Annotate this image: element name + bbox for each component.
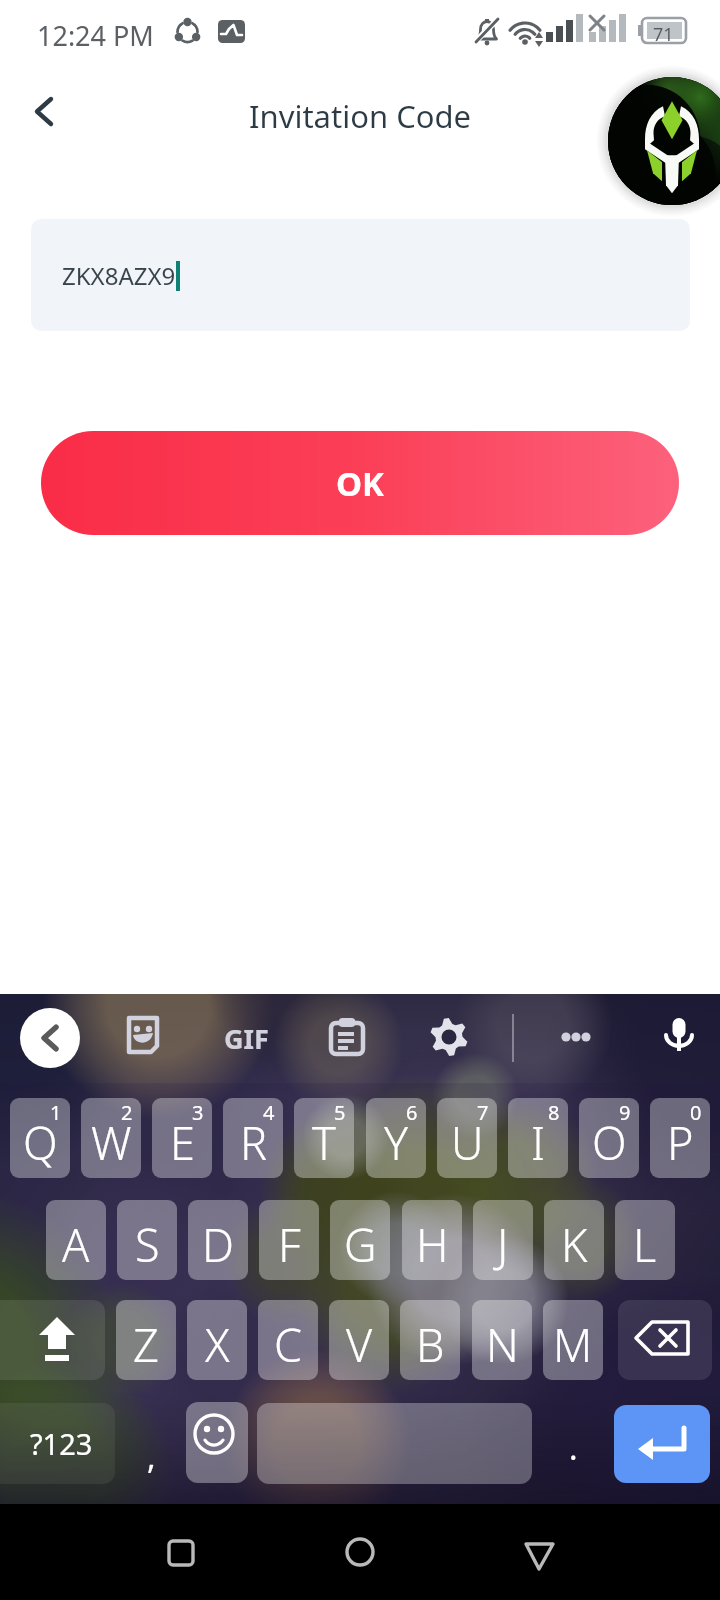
staticText: O	[592, 1112, 627, 1173]
staticText: Y	[384, 1112, 409, 1173]
staticText: S	[135, 1214, 160, 1275]
button[interactable]: Q	[10, 1098, 70, 1178]
button[interactable]: W	[81, 1098, 141, 1178]
button[interactable]: H	[402, 1200, 462, 1280]
staticText: R	[240, 1112, 267, 1173]
button[interactable]: G	[330, 1200, 390, 1280]
button[interactable]: B	[400, 1300, 460, 1380]
staticText: GIF	[224, 1020, 269, 1057]
button[interactable]: J	[473, 1200, 533, 1280]
staticText: X	[205, 1314, 230, 1375]
button[interactable]: F	[259, 1200, 319, 1280]
staticText: 1	[50, 1099, 62, 1126]
button[interactable]: R	[223, 1098, 283, 1178]
staticText: 3	[192, 1099, 204, 1126]
button[interactable]: Enter	[614, 1405, 710, 1483]
staticText: P	[667, 1112, 694, 1173]
button[interactable]: Recents	[151, 1523, 211, 1583]
staticText: 5	[334, 1099, 346, 1126]
staticText: OK	[336, 461, 385, 506]
button[interactable]: K	[544, 1200, 604, 1280]
button[interactable]: More options	[546, 1017, 586, 1057]
button[interactable]: OK	[41, 431, 679, 535]
button[interactable]: T	[294, 1098, 354, 1178]
staticText: J	[497, 1214, 509, 1275]
button[interactable]: Z	[116, 1300, 176, 1380]
button[interactable]: ?123	[0, 1403, 115, 1484]
staticText: 2	[121, 1099, 133, 1126]
button[interactable]: O	[579, 1098, 639, 1178]
button[interactable]: Clipboard	[328, 1018, 366, 1056]
staticText: Z	[133, 1314, 159, 1375]
staticText: V	[346, 1314, 373, 1375]
button[interactable]: Backspace	[618, 1300, 712, 1380]
staticText: G	[344, 1214, 377, 1275]
staticText: 6	[406, 1099, 418, 1126]
button[interactable]: U	[437, 1098, 497, 1178]
button[interactable]: C	[258, 1300, 318, 1380]
button[interactable]: S	[117, 1200, 177, 1280]
staticText: ,	[147, 1435, 156, 1479]
staticText: 12:24 PM	[37, 17, 154, 54]
staticText: 0	[690, 1099, 702, 1126]
staticText: Q	[23, 1112, 58, 1173]
staticText: K	[561, 1214, 588, 1275]
button[interactable]: I	[508, 1098, 568, 1178]
staticText: 4	[263, 1099, 275, 1126]
staticText: ?123	[30, 1424, 93, 1463]
staticText: U	[451, 1112, 484, 1173]
staticText: M	[553, 1314, 593, 1375]
staticText: 71	[653, 22, 674, 47]
staticText: 8	[548, 1099, 560, 1126]
staticText: ZKX8AZX9	[62, 259, 176, 292]
button[interactable]: Space	[257, 1403, 532, 1484]
staticText: N	[486, 1314, 519, 1375]
button[interactable]: X	[187, 1300, 247, 1380]
button[interactable]: Home	[330, 1522, 390, 1582]
button[interactable]: Emoji	[186, 1402, 248, 1483]
button[interactable]: Stickers	[121, 1016, 165, 1060]
button[interactable]: Keyboard settings	[427, 1015, 471, 1059]
button[interactable]: Shift	[0, 1300, 105, 1380]
staticText: A	[62, 1214, 90, 1275]
button[interactable]: Voice input	[659, 1016, 699, 1056]
button[interactable]: M	[543, 1300, 603, 1380]
button[interactable]: V	[329, 1300, 389, 1380]
staticText: F	[278, 1214, 301, 1275]
staticText: Invitation Code	[249, 95, 472, 137]
staticText: B	[416, 1314, 445, 1375]
staticText: I	[531, 1112, 545, 1173]
staticText: .	[569, 1426, 578, 1470]
button[interactable]: Y	[366, 1098, 426, 1178]
button[interactable]: L	[615, 1200, 675, 1280]
button[interactable]: E	[152, 1098, 212, 1178]
button[interactable]: Close keyboard toolbar	[20, 1008, 80, 1068]
button[interactable]: .	[540, 1403, 604, 1484]
staticText: H	[416, 1214, 449, 1275]
staticText: T	[312, 1112, 336, 1173]
button[interactable]: N	[472, 1300, 532, 1380]
staticText: 9	[619, 1099, 631, 1126]
staticText: 7	[477, 1099, 489, 1126]
staticText: D	[202, 1214, 234, 1275]
button[interactable]: ZKX8AZX9	[31, 219, 690, 331]
staticText: L	[633, 1214, 657, 1275]
staticText: C	[274, 1314, 303, 1375]
button[interactable]: ,	[118, 1403, 182, 1484]
button[interactable]: A	[46, 1200, 106, 1280]
button[interactable]: P	[650, 1098, 710, 1178]
button[interactable]: D	[188, 1200, 248, 1280]
button[interactable]: Back	[509, 1522, 569, 1582]
button[interactable]: GIF	[218, 1012, 274, 1064]
button[interactable]: Profile	[608, 77, 720, 205]
button[interactable]: Back	[14, 84, 72, 142]
staticText: W	[91, 1112, 132, 1173]
staticText: E	[170, 1112, 195, 1173]
